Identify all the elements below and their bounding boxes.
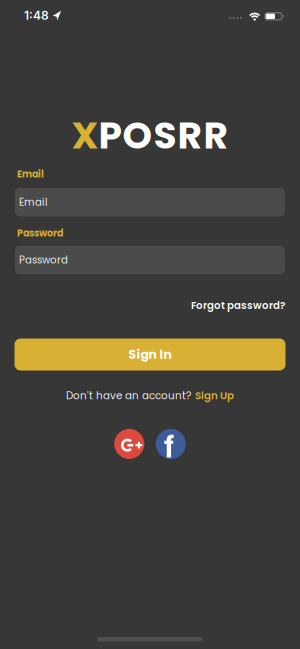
staticText: X [71,109,98,162]
staticText: Password [17,226,63,240]
button[interactable]: Sign in with Google [114,429,144,459]
button[interactable]: Sign Up [195,388,234,403]
staticText: Sign In [128,346,171,363]
staticText: Password [19,253,68,267]
button[interactable]: Sign in with Facebook [156,429,186,459]
staticText: Forgot password? [191,298,285,312]
staticText: Email [17,168,44,181]
staticText: 1:48 [24,8,49,23]
button[interactable]: Sign In [14,338,285,370]
staticText: Email [19,195,48,209]
staticText: POSRR [98,109,228,162]
button[interactable]: Forgot password? [191,298,285,312]
button[interactable]: Password [15,246,285,274]
staticText: Sign Up [195,388,234,403]
button[interactable]: Email [15,188,285,216]
staticText: Don't have an account? [66,388,191,403]
